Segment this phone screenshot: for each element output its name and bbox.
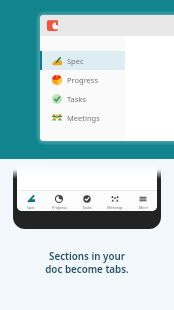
staticText: Sections in your doc become tabs. bbox=[45, 250, 129, 276]
staticText: Progress bbox=[52, 205, 67, 210]
staticText: Spec bbox=[27, 205, 35, 210]
staticText: More bbox=[139, 205, 148, 210]
button[interactable]: Spec bbox=[40, 51, 125, 70]
staticText: Tasks bbox=[82, 205, 92, 210]
staticText: Meetings bbox=[67, 113, 100, 123]
staticText: Spec bbox=[67, 56, 84, 66]
staticText: Progress bbox=[67, 75, 98, 85]
staticText: Meetings bbox=[107, 205, 123, 210]
button[interactable]: Progress bbox=[40, 70, 125, 89]
button[interactable]: Progress bbox=[45, 191, 73, 211]
button[interactable]: Spec bbox=[17, 191, 45, 211]
button[interactable]: Meetings bbox=[40, 108, 125, 127]
button[interactable]: Tasks bbox=[73, 191, 101, 211]
button[interactable]: More bbox=[129, 191, 157, 211]
button[interactable]: Meetings bbox=[101, 191, 129, 211]
other: Coda document bbox=[47, 20, 58, 31]
button[interactable]: Tasks bbox=[40, 89, 125, 108]
staticText: Tasks bbox=[67, 94, 86, 104]
